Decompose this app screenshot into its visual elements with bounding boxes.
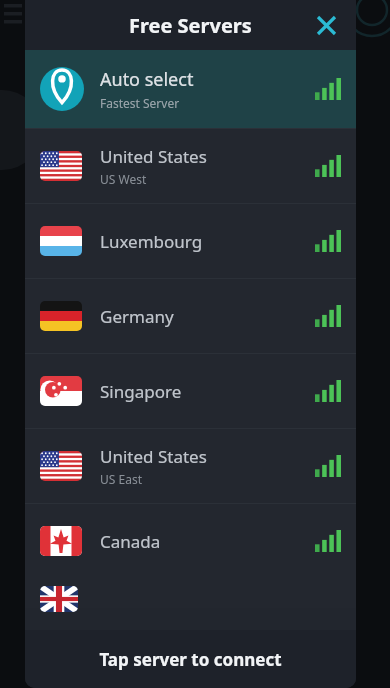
staticText: Canada — [100, 530, 161, 553]
staticText: United States — [100, 445, 207, 468]
staticText: US East — [100, 471, 142, 487]
button[interactable]: United States — [25, 429, 356, 503]
staticText: Germany — [100, 305, 174, 328]
button[interactable]: United States — [25, 129, 356, 203]
staticText: Fastest Server — [100, 95, 180, 111]
staticText: United States — [100, 145, 207, 168]
staticText: Auto select — [100, 67, 194, 92]
button[interactable]: Tap server to connect — [25, 630, 356, 688]
button[interactable]: Singapore — [25, 354, 356, 428]
button[interactable] — [25, 578, 356, 608]
staticText: US West — [100, 171, 147, 187]
button[interactable]: Auto select — [25, 50, 356, 128]
staticText: Free Servers — [129, 12, 252, 39]
button[interactable]: Luxembourg — [25, 204, 356, 278]
button[interactable]: Canada — [25, 504, 356, 578]
button[interactable]: Germany — [25, 279, 356, 353]
button[interactable]: Close — [306, 5, 346, 45]
staticText: Singapore — [100, 380, 182, 403]
staticText: Tap server to connect — [99, 648, 282, 671]
staticText: Luxembourg — [100, 230, 203, 253]
